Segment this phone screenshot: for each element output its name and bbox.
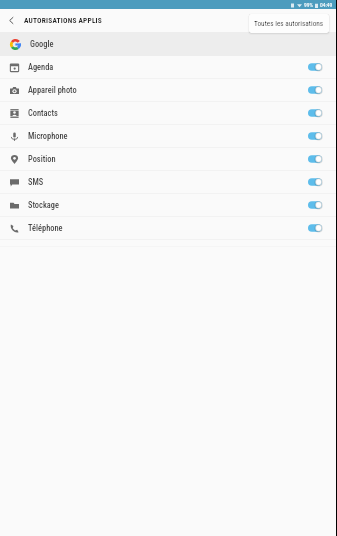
button[interactable]: Contacts	[0, 102, 337, 124]
staticText: Contacts	[28, 108, 58, 118]
button[interactable]: Appareil photo	[0, 79, 337, 101]
staticText: Appareil photo	[28, 85, 77, 95]
staticText: 99%	[304, 2, 313, 8]
button[interactable]: Position	[0, 148, 337, 170]
button[interactable]: Toutes les autorisations	[249, 14, 329, 33]
button[interactable]: Toggle permission	[303, 152, 322, 166]
button[interactable]: Toggle permission	[303, 221, 322, 235]
button[interactable]: Téléphone	[0, 217, 337, 239]
button[interactable]: Google	[0, 32, 337, 56]
staticText: SMS	[28, 177, 44, 187]
button[interactable]: Toggle permission	[303, 175, 322, 189]
staticText: AUTORISATIONS APPLIS	[24, 16, 103, 25]
staticText: Agenda	[28, 62, 54, 72]
button[interactable]: Toggle permission	[303, 83, 322, 97]
button[interactable]: SMS	[0, 171, 337, 193]
staticText: Toutes les autorisations	[254, 19, 324, 28]
staticText: Google	[30, 39, 54, 49]
staticText: Stockage	[28, 200, 59, 210]
button[interactable]: Toggle permission	[303, 129, 322, 143]
button[interactable]: Back	[0, 9, 22, 32]
staticText: Téléphone	[28, 223, 63, 233]
button[interactable]: Toggle permission	[303, 60, 322, 74]
button[interactable]: Agenda	[0, 56, 337, 78]
staticText: 04:49	[320, 2, 333, 8]
button[interactable]: Microphone	[0, 125, 337, 147]
button[interactable]: Toggle permission	[303, 106, 322, 120]
button[interactable]: Toggle permission	[303, 198, 322, 212]
staticText: Position	[28, 154, 56, 164]
button[interactable]: Stockage	[0, 194, 337, 216]
staticText: Microphone	[28, 131, 68, 141]
